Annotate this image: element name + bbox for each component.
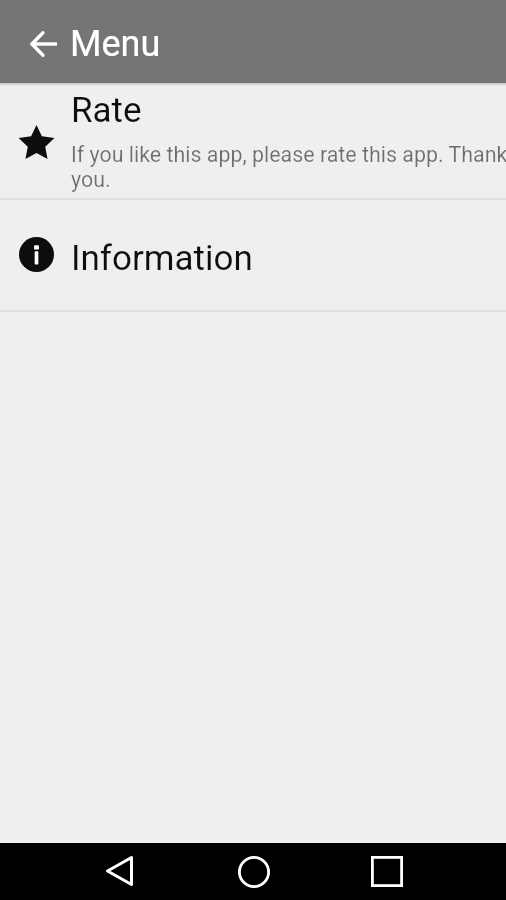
- button[interactable]: Recents: [344, 843, 429, 900]
- button[interactable]: Navigate up: [17, 2, 69, 85]
- button[interactable]: Back: [77, 842, 162, 899]
- staticText: Menu: [70, 23, 161, 65]
- staticText: Information: [71, 238, 253, 279]
- staticText: Rate: [71, 90, 142, 131]
- staticText: If you like this app, please rate this a…: [71, 142, 506, 192]
- button[interactable]: Home: [211, 843, 296, 900]
- button[interactable]: Rate: [0, 83, 506, 198]
- button[interactable]: Information: [0, 200, 506, 310]
